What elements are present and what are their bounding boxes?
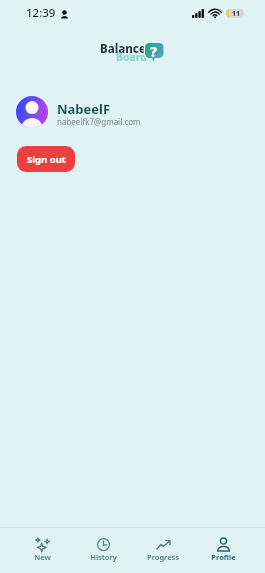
- staticText: Sign out: [27, 153, 66, 166]
- staticText: 12:39: [26, 5, 56, 21]
- button[interactable]: Profile: [193, 531, 253, 570]
- staticText: Board: [116, 50, 147, 64]
- button[interactable]: Progress: [133, 531, 193, 570]
- staticText: Progress: [147, 552, 179, 562]
- staticText: History: [90, 552, 117, 562]
- button[interactable]: New: [12, 531, 73, 570]
- staticText: New: [34, 552, 51, 562]
- staticText: Profile: [211, 552, 236, 562]
- staticText: ?: [150, 42, 157, 61]
- button[interactable]: Sign out: [17, 146, 75, 172]
- staticText: 11: [232, 9, 241, 18]
- button[interactable]: Profile picture: [0, 96, 265, 128]
- button[interactable]: History: [73, 531, 133, 570]
- staticText: nabeelfk7@gmail.com: [57, 116, 141, 127]
- other: Profile picture: [16, 96, 48, 128]
- staticText: Balance: [100, 41, 146, 57]
- staticText: NabeelF: [57, 100, 111, 118]
